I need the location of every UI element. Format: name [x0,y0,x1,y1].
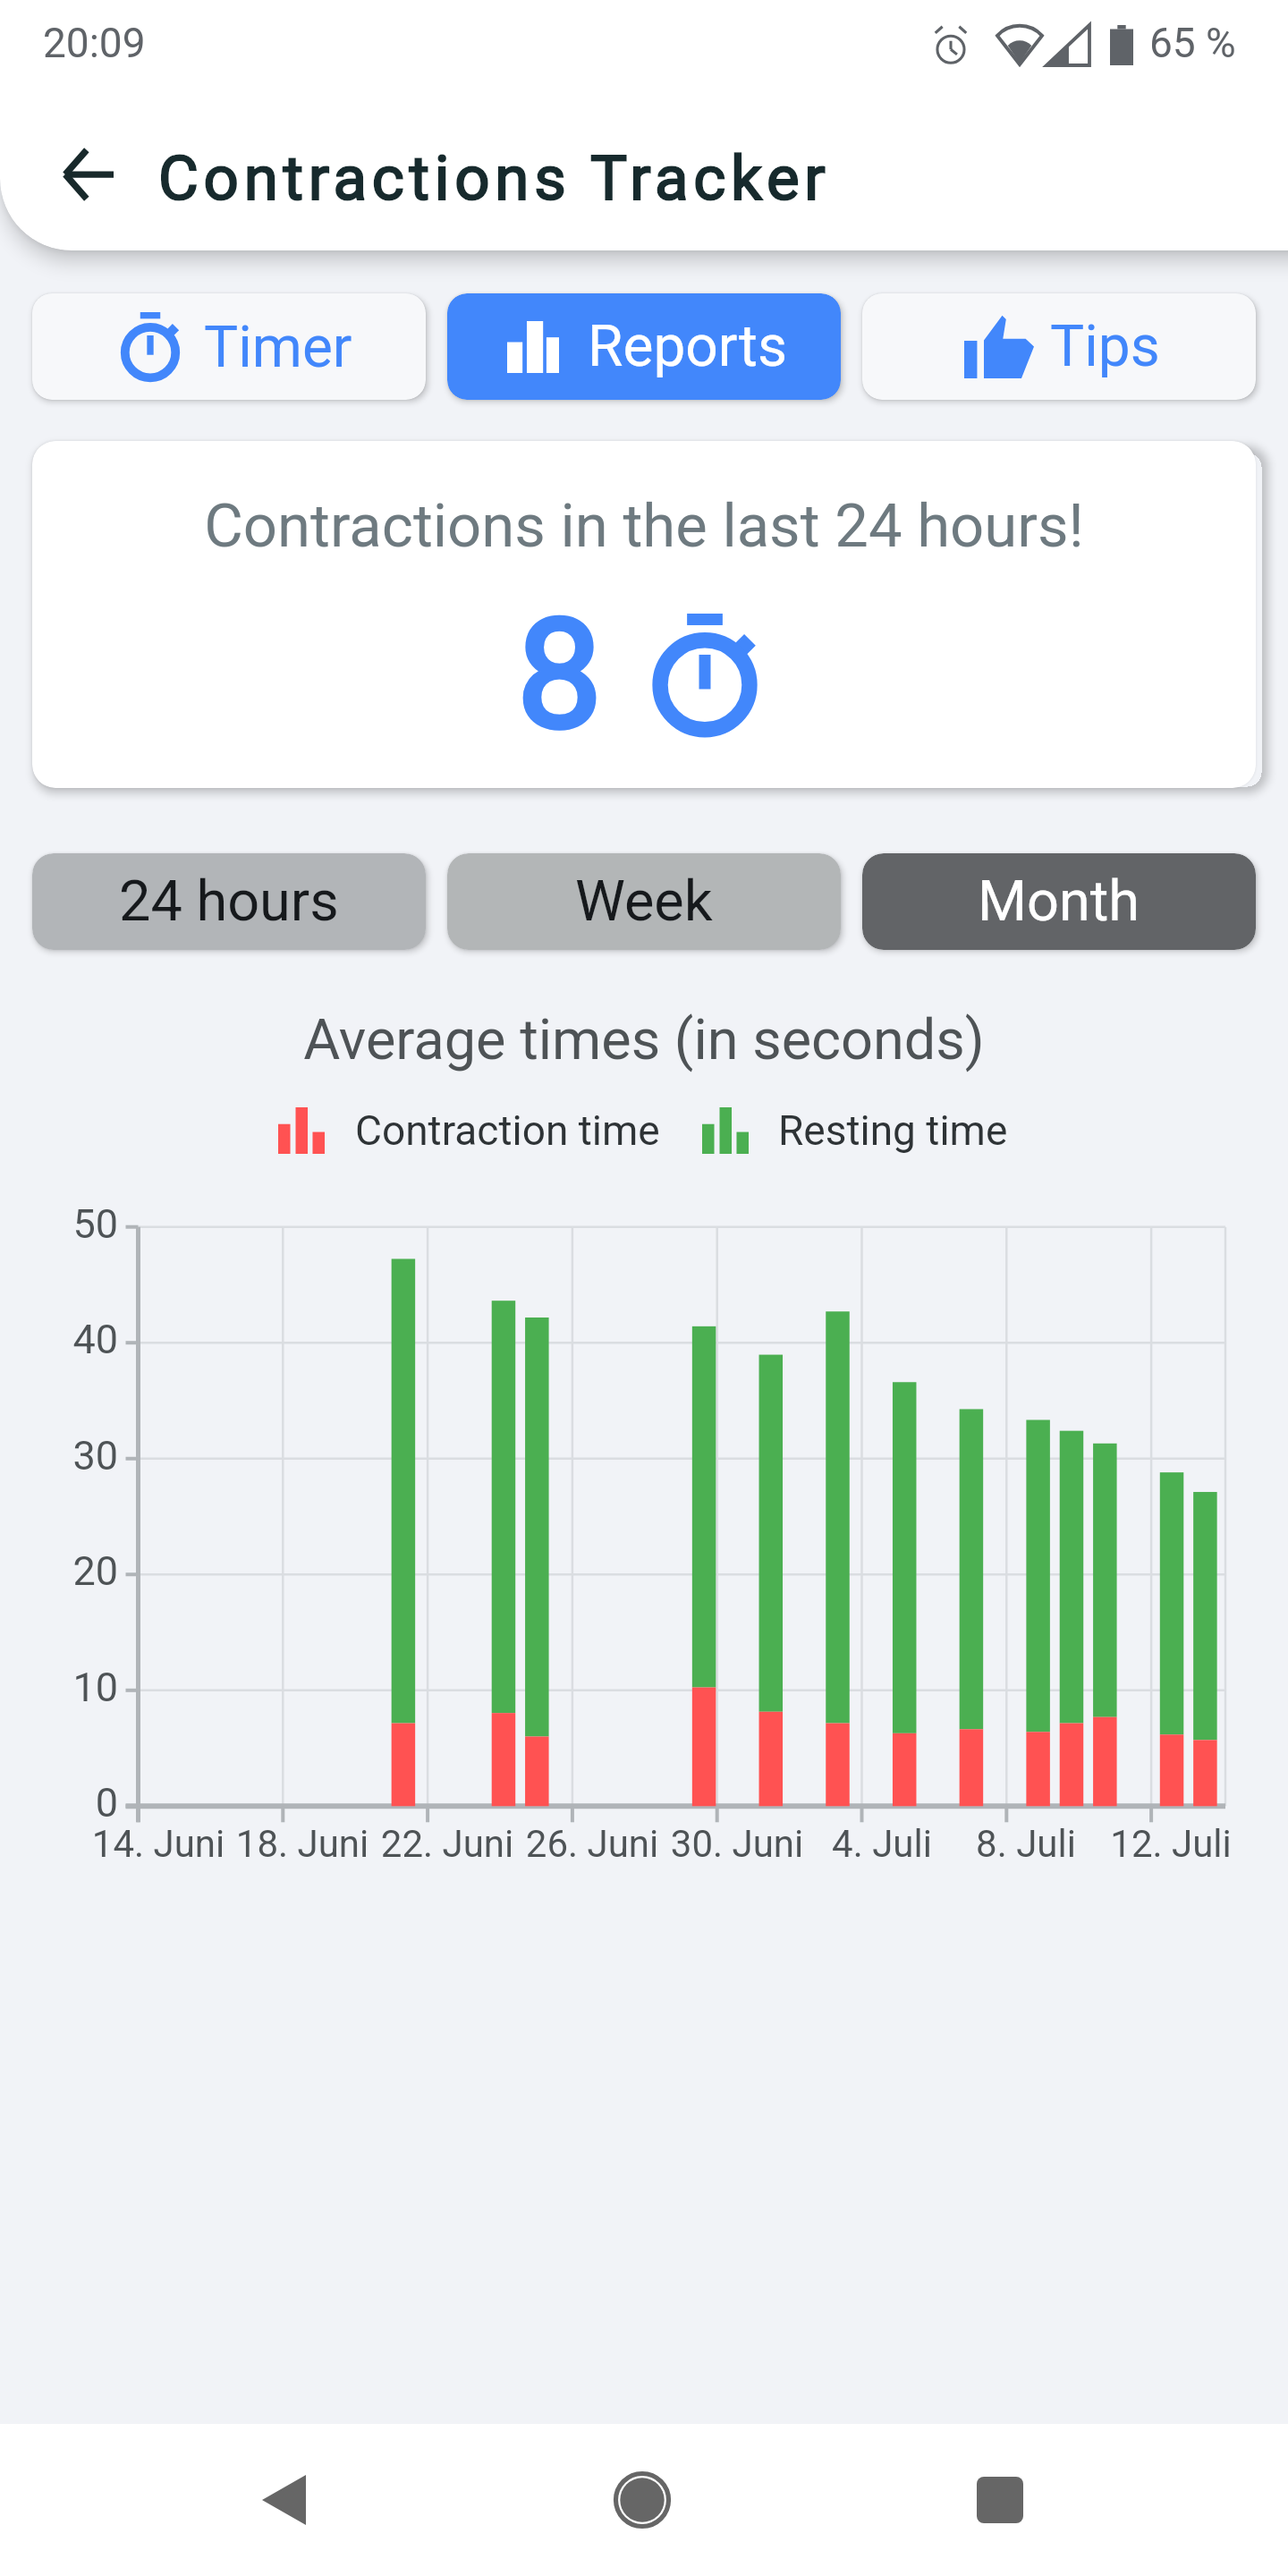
staticText: 8 [517,586,602,763]
staticText: 65 % [1149,19,1236,67]
staticText: 26. Juni [485,1822,699,1866]
staticText: 30. Juni [630,1822,844,1866]
staticText: 24 hours [119,869,339,935]
staticText: 20:09 [43,19,146,67]
button[interactable]: Back [225,2442,342,2558]
staticText: Tips [1050,313,1160,380]
staticText: Timer [204,314,352,381]
button[interactable]: Month [862,853,1256,950]
staticText: 0 [11,1779,118,1826]
button[interactable]: Timer [32,293,426,400]
staticText: Resting time [778,1106,1008,1155]
staticText: 30 [11,1432,118,1479]
staticText: Month [978,869,1140,935]
button[interactable]: Reports [447,293,841,400]
staticText: 12. Juli [1063,1822,1278,1866]
staticText: Week [575,869,713,935]
staticText: 4. Juli [775,1822,989,1866]
button[interactable]: 24 hours [32,853,426,950]
staticText: 20 [11,1547,118,1595]
staticText: 50 [11,1200,118,1248]
staticText: 10 [11,1664,118,1711]
staticText: 14. Juni [51,1822,266,1866]
staticText: 22. Juni [340,1822,555,1866]
staticText: Contraction time [355,1106,660,1155]
staticText: 8. Juli [919,1822,1133,1866]
button[interactable]: Back [52,139,123,210]
button[interactable]: Home [584,2442,700,2558]
button[interactable]: Recents [942,2442,1058,2558]
staticText: Average times (in seconds) [0,1007,1288,1073]
button[interactable]: Tips [862,293,1256,400]
button[interactable]: Week [447,853,841,950]
staticText: 18. Juni [195,1822,410,1866]
staticText: Reports [588,313,788,380]
staticText: Contractions in the last 24 hours! [32,491,1256,562]
staticText: 40 [11,1316,118,1363]
staticText: Contractions Tracker [158,142,831,215]
